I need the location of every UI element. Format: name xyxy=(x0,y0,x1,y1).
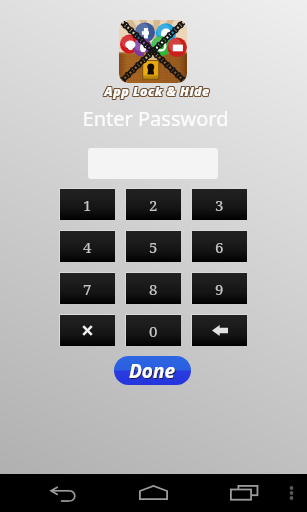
button[interactable]: 8 xyxy=(126,273,181,304)
staticText: 7 xyxy=(83,279,92,299)
staticText: 5 xyxy=(149,237,158,257)
staticText: Enter Password xyxy=(2,105,307,132)
staticText: 4 xyxy=(83,237,92,257)
staticText: 1 xyxy=(83,195,92,215)
staticText: Done xyxy=(130,359,177,385)
button[interactable]: Recent apps xyxy=(230,485,258,500)
button[interactable]: More options xyxy=(288,486,295,502)
button[interactable]: 0 xyxy=(126,315,181,346)
other: Backspace xyxy=(212,325,228,336)
button[interactable]: Clear xyxy=(60,315,115,346)
button[interactable]: 3 xyxy=(192,189,247,220)
staticText: 2 xyxy=(149,195,158,215)
staticText: App Lock & Hide xyxy=(103,82,209,99)
button[interactable]: 5 xyxy=(126,231,181,262)
button[interactable]: 9 xyxy=(192,273,247,304)
staticText: 3 xyxy=(215,195,224,215)
staticText: App Lock & Hide xyxy=(104,83,210,100)
button[interactable]: 6 xyxy=(192,231,247,262)
button[interactable]: Back xyxy=(51,486,77,501)
button[interactable]: Backspace xyxy=(192,315,247,346)
button[interactable]: 1 xyxy=(60,189,115,220)
staticText: App Lock & Hide xyxy=(104,84,210,101)
staticText: App Lock & Hide xyxy=(103,83,209,100)
button[interactable]: 4 xyxy=(60,231,115,262)
other: Clear xyxy=(82,325,93,336)
button[interactable]: Done xyxy=(114,356,191,385)
staticText: 9 xyxy=(215,279,224,299)
staticText: App Lock & Hide xyxy=(105,82,211,99)
button[interactable]: 2 xyxy=(126,189,181,220)
staticText: 6 xyxy=(215,237,224,257)
staticText: Done xyxy=(129,358,176,384)
staticText: App Lock & Hide xyxy=(105,84,211,101)
staticText: App Lock & Hide xyxy=(105,83,211,100)
staticText: 0 xyxy=(149,321,158,341)
staticText: App Lock & Hide xyxy=(103,84,209,101)
button[interactable]: 7 xyxy=(60,273,115,304)
staticText: 8 xyxy=(149,279,158,299)
staticText: App Lock & Hide xyxy=(104,82,210,99)
button[interactable]: Home xyxy=(139,485,168,500)
